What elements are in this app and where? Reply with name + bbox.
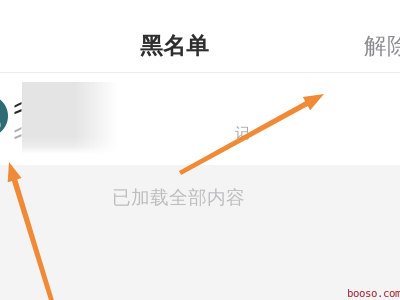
button[interactable]: 黑名单 (134, 24, 215, 68)
staticText: 已加载全部内容 (112, 186, 245, 209)
button[interactable]: 解除 (358, 23, 400, 69)
staticText: 黑名单 (140, 32, 209, 60)
staticText: 解除 (364, 32, 400, 60)
staticText: 记 (235, 124, 250, 142)
button[interactable]: 记 (0, 73, 400, 165)
staticText: booso.com (347, 287, 400, 299)
